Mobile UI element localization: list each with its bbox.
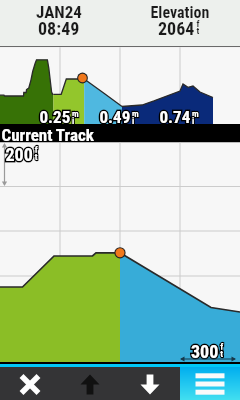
button[interactable]: Menu (180, 367, 240, 400)
button[interactable]: Close (0, 367, 60, 400)
button[interactable]: Pan down (120, 367, 180, 400)
button[interactable]: Pan up (60, 367, 120, 400)
